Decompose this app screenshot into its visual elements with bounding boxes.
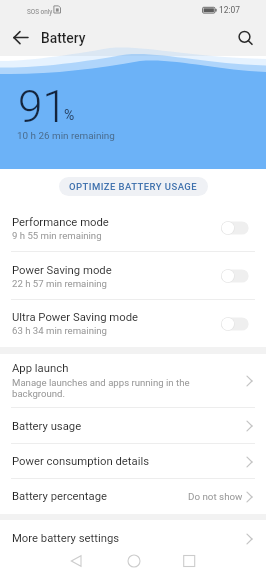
button[interactable]: Recents [177,549,201,573]
button[interactable]: Back [6,26,32,52]
staticText: 91 [18,81,67,133]
staticText: % [64,107,75,123]
button[interactable]: Home [122,549,146,573]
button[interactable]: OPTIMIZE BATTERY USAGE [59,177,208,196]
staticText: Ultra Power Saving mode [12,311,139,324]
button[interactable]: Power Saving mode [0,252,266,300]
button[interactable]: Performance mode [0,204,266,252]
button[interactable]: Battery percentage [0,479,266,514]
staticText: 9 h 55 min remaining [12,230,102,241]
staticText: Power consumption details [12,455,149,468]
staticText: 10 h 26 min remaining [17,130,115,142]
staticText: App launch [12,362,69,375]
button[interactable]: Power consumption details [0,444,266,479]
staticText: SOS only [27,8,53,16]
staticText: OPTIMIZE BATTERY USAGE [69,181,198,192]
button[interactable]: App launch [0,354,266,408]
staticText: Manage launches and apps running in the … [12,377,195,399]
staticText: 63 h 34 min remaining [12,325,107,336]
button[interactable]: Back [64,549,88,573]
staticText: Do not show [188,491,243,502]
staticText: 22 h 57 min remaining [12,278,107,289]
staticText: More battery settings [12,532,120,545]
staticText: Battery usage [12,420,82,433]
button[interactable]: More battery settings [0,520,266,557]
staticText: Power Saving mode [12,264,112,277]
button[interactable]: Search [232,25,260,53]
button[interactable]: Ultra Power Saving mode [0,300,266,347]
staticText: Performance mode [12,216,109,229]
staticText: Battery [41,30,86,46]
staticText: Battery percentage [12,490,108,503]
button[interactable]: Battery usage [0,408,266,444]
staticText: 12:07 [219,5,240,15]
